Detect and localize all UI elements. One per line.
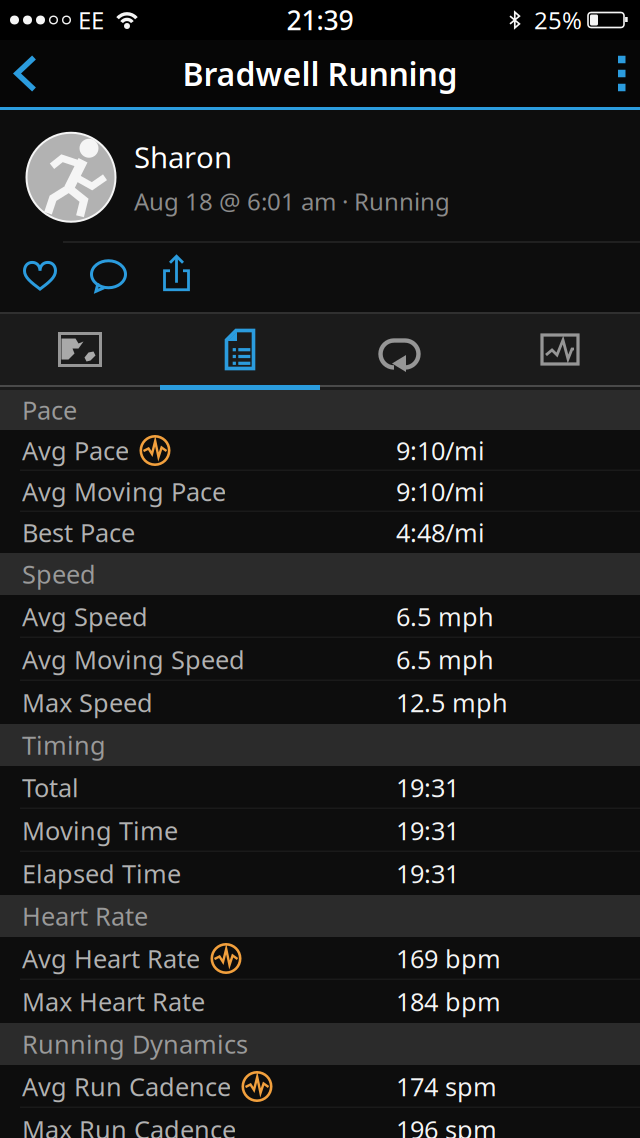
- staticText: 19:31: [396, 771, 459, 804]
- staticText: 184 bpm: [396, 985, 501, 1018]
- staticText: Max Heart Rate: [22, 985, 205, 1018]
- staticText: Avg Moving Pace: [22, 475, 226, 508]
- staticText: 25%: [534, 4, 582, 36]
- staticText: Avg Pace: [22, 434, 129, 467]
- staticText: Timing: [22, 728, 106, 762]
- staticText: Moving Time: [22, 814, 178, 847]
- button[interactable]: Like: [0, 261, 56, 291]
- staticText: Heart Rate: [22, 899, 148, 933]
- staticText: 4:48/mi: [396, 516, 485, 549]
- staticText: 196 spm: [396, 1113, 497, 1138]
- staticText: Speed: [22, 557, 96, 591]
- staticText: Sharon: [134, 137, 232, 176]
- staticText: Aug 18 @ 6:01 am · Running: [134, 185, 450, 217]
- staticText: 6.5 mph: [396, 600, 494, 633]
- button[interactable]: Laps: [320, 314, 480, 385]
- staticText: EE: [78, 4, 104, 36]
- button[interactable]: More options: [602, 56, 640, 91]
- button[interactable]: Comment: [56, 259, 127, 292]
- button[interactable]: Activity photos: [0, 314, 160, 385]
- staticText: 169 bpm: [396, 942, 501, 975]
- button[interactable]: Charts: [480, 314, 640, 385]
- staticText: Avg Run Cadence: [22, 1070, 231, 1103]
- staticText: 174 spm: [396, 1070, 497, 1103]
- staticText: Total: [22, 771, 79, 804]
- staticText: Running Dynamics: [22, 1027, 248, 1061]
- staticText: Bradwell Running: [182, 52, 457, 95]
- staticText: Best Pace: [22, 516, 135, 549]
- staticText: Avg Speed: [22, 600, 148, 633]
- staticText: Avg Heart Rate: [22, 942, 200, 975]
- staticText: Max Speed: [22, 686, 153, 719]
- button[interactable]: Back: [0, 55, 48, 91]
- staticText: Elapsed Time: [22, 857, 181, 890]
- staticText: 19:31: [396, 814, 459, 847]
- button[interactable]: Share: [127, 258, 190, 294]
- staticText: 6.5 mph: [396, 643, 494, 676]
- staticText: 19:31: [396, 857, 459, 890]
- button[interactable]: Stats: [160, 314, 320, 385]
- staticText: 9:10/mi: [396, 434, 485, 467]
- staticText: 21:39: [286, 2, 353, 38]
- staticText: 12.5 mph: [396, 686, 508, 719]
- staticText: 9:10/mi: [396, 475, 485, 508]
- staticText: Avg Moving Speed: [22, 643, 245, 676]
- staticText: Pace: [22, 393, 77, 427]
- staticText: Max Run Cadence: [22, 1113, 236, 1138]
